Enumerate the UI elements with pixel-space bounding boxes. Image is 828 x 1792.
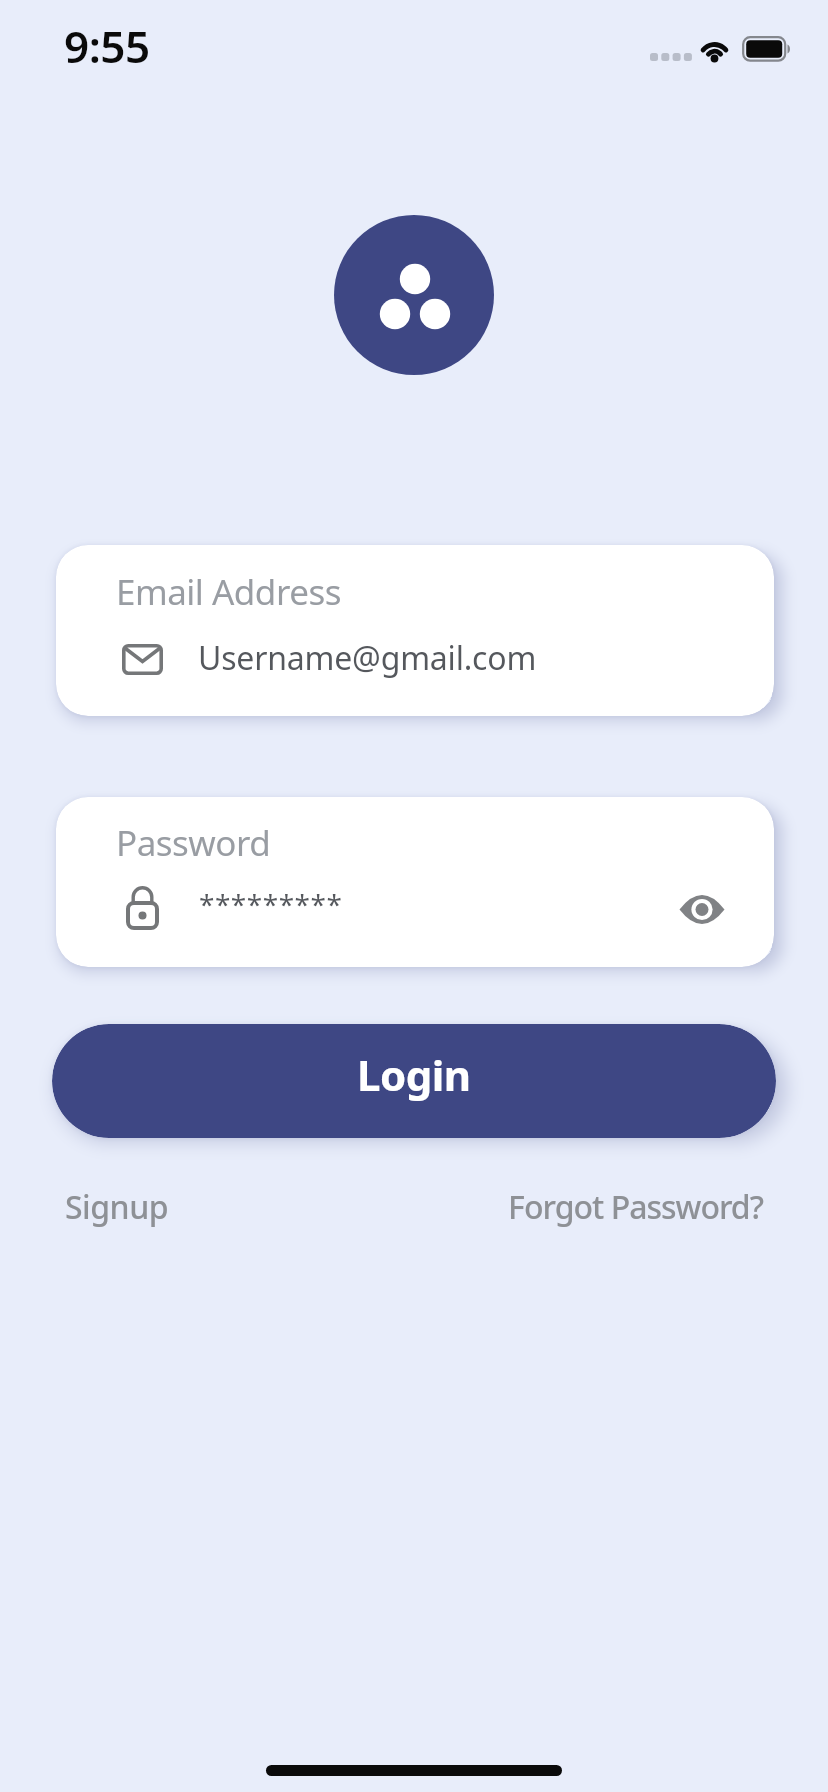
staticText: Login [357, 1046, 471, 1103]
staticText: Email Address [116, 568, 341, 616]
staticText: ********* [199, 885, 343, 923]
button[interactable]: Password [56, 797, 774, 967]
button[interactable]: Login [52, 1024, 776, 1138]
button[interactable]: Forgot Password? [508, 1185, 763, 1229]
staticText: Password [116, 819, 271, 867]
button[interactable]: Email Address [56, 545, 774, 716]
staticText: 9:55 [64, 16, 150, 76]
button[interactable] [679, 895, 725, 925]
button[interactable]: Signup [65, 1185, 169, 1229]
staticText: Username@gmail.com [198, 636, 537, 680]
